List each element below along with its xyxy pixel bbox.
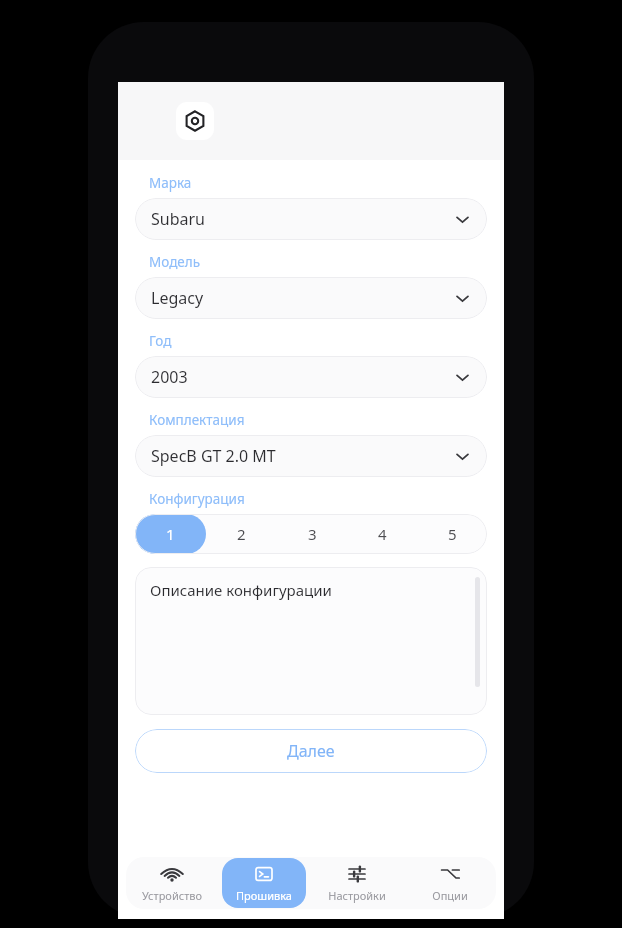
staticText: 5 — [448, 524, 457, 544]
button[interactable]: Legacy — [135, 277, 487, 319]
staticText: Год — [149, 332, 172, 350]
staticText: 3 — [308, 524, 317, 544]
staticText: 2 — [237, 524, 246, 544]
staticText: Subaru — [151, 208, 456, 230]
button[interactable]: Далее — [135, 729, 487, 773]
staticText: Устройство — [142, 888, 202, 903]
staticText: Комплектация — [149, 411, 245, 429]
button[interactable]: 2003 — [135, 356, 487, 398]
button[interactable]: 5 — [417, 514, 487, 554]
button[interactable]: SpecB GT 2.0 MT — [135, 435, 487, 477]
button[interactable]: 3 — [277, 514, 347, 554]
staticText: Далее — [287, 740, 335, 762]
button[interactable]: 4 — [347, 514, 417, 554]
staticText: 4 — [378, 524, 387, 544]
staticText: Legacy — [151, 287, 456, 309]
staticText: Марка — [149, 174, 192, 192]
staticText: 2003 — [151, 366, 456, 388]
button[interactable]: Устройство — [130, 858, 214, 908]
button[interactable]: Описание конфигурации — [135, 567, 487, 715]
staticText: Конфигурация — [149, 490, 245, 508]
staticText: Настройки — [328, 888, 386, 903]
button[interactable]: Logo — [176, 102, 214, 140]
staticText: Опции — [432, 888, 468, 903]
staticText: 1 — [166, 524, 175, 544]
button[interactable]: Прошивка — [222, 858, 306, 908]
button[interactable]: 2 — [206, 514, 277, 554]
button[interactable]: Настройки — [314, 858, 399, 908]
staticText: Прошивка — [236, 888, 292, 903]
button[interactable]: Опции — [407, 858, 492, 908]
staticText: Модель — [149, 253, 201, 271]
button[interactable]: Subaru — [135, 198, 487, 240]
button[interactable]: 1 — [135, 514, 206, 554]
staticText: SpecB GT 2.0 MT — [151, 445, 456, 467]
staticText: Описание конфигурации — [150, 580, 332, 600]
